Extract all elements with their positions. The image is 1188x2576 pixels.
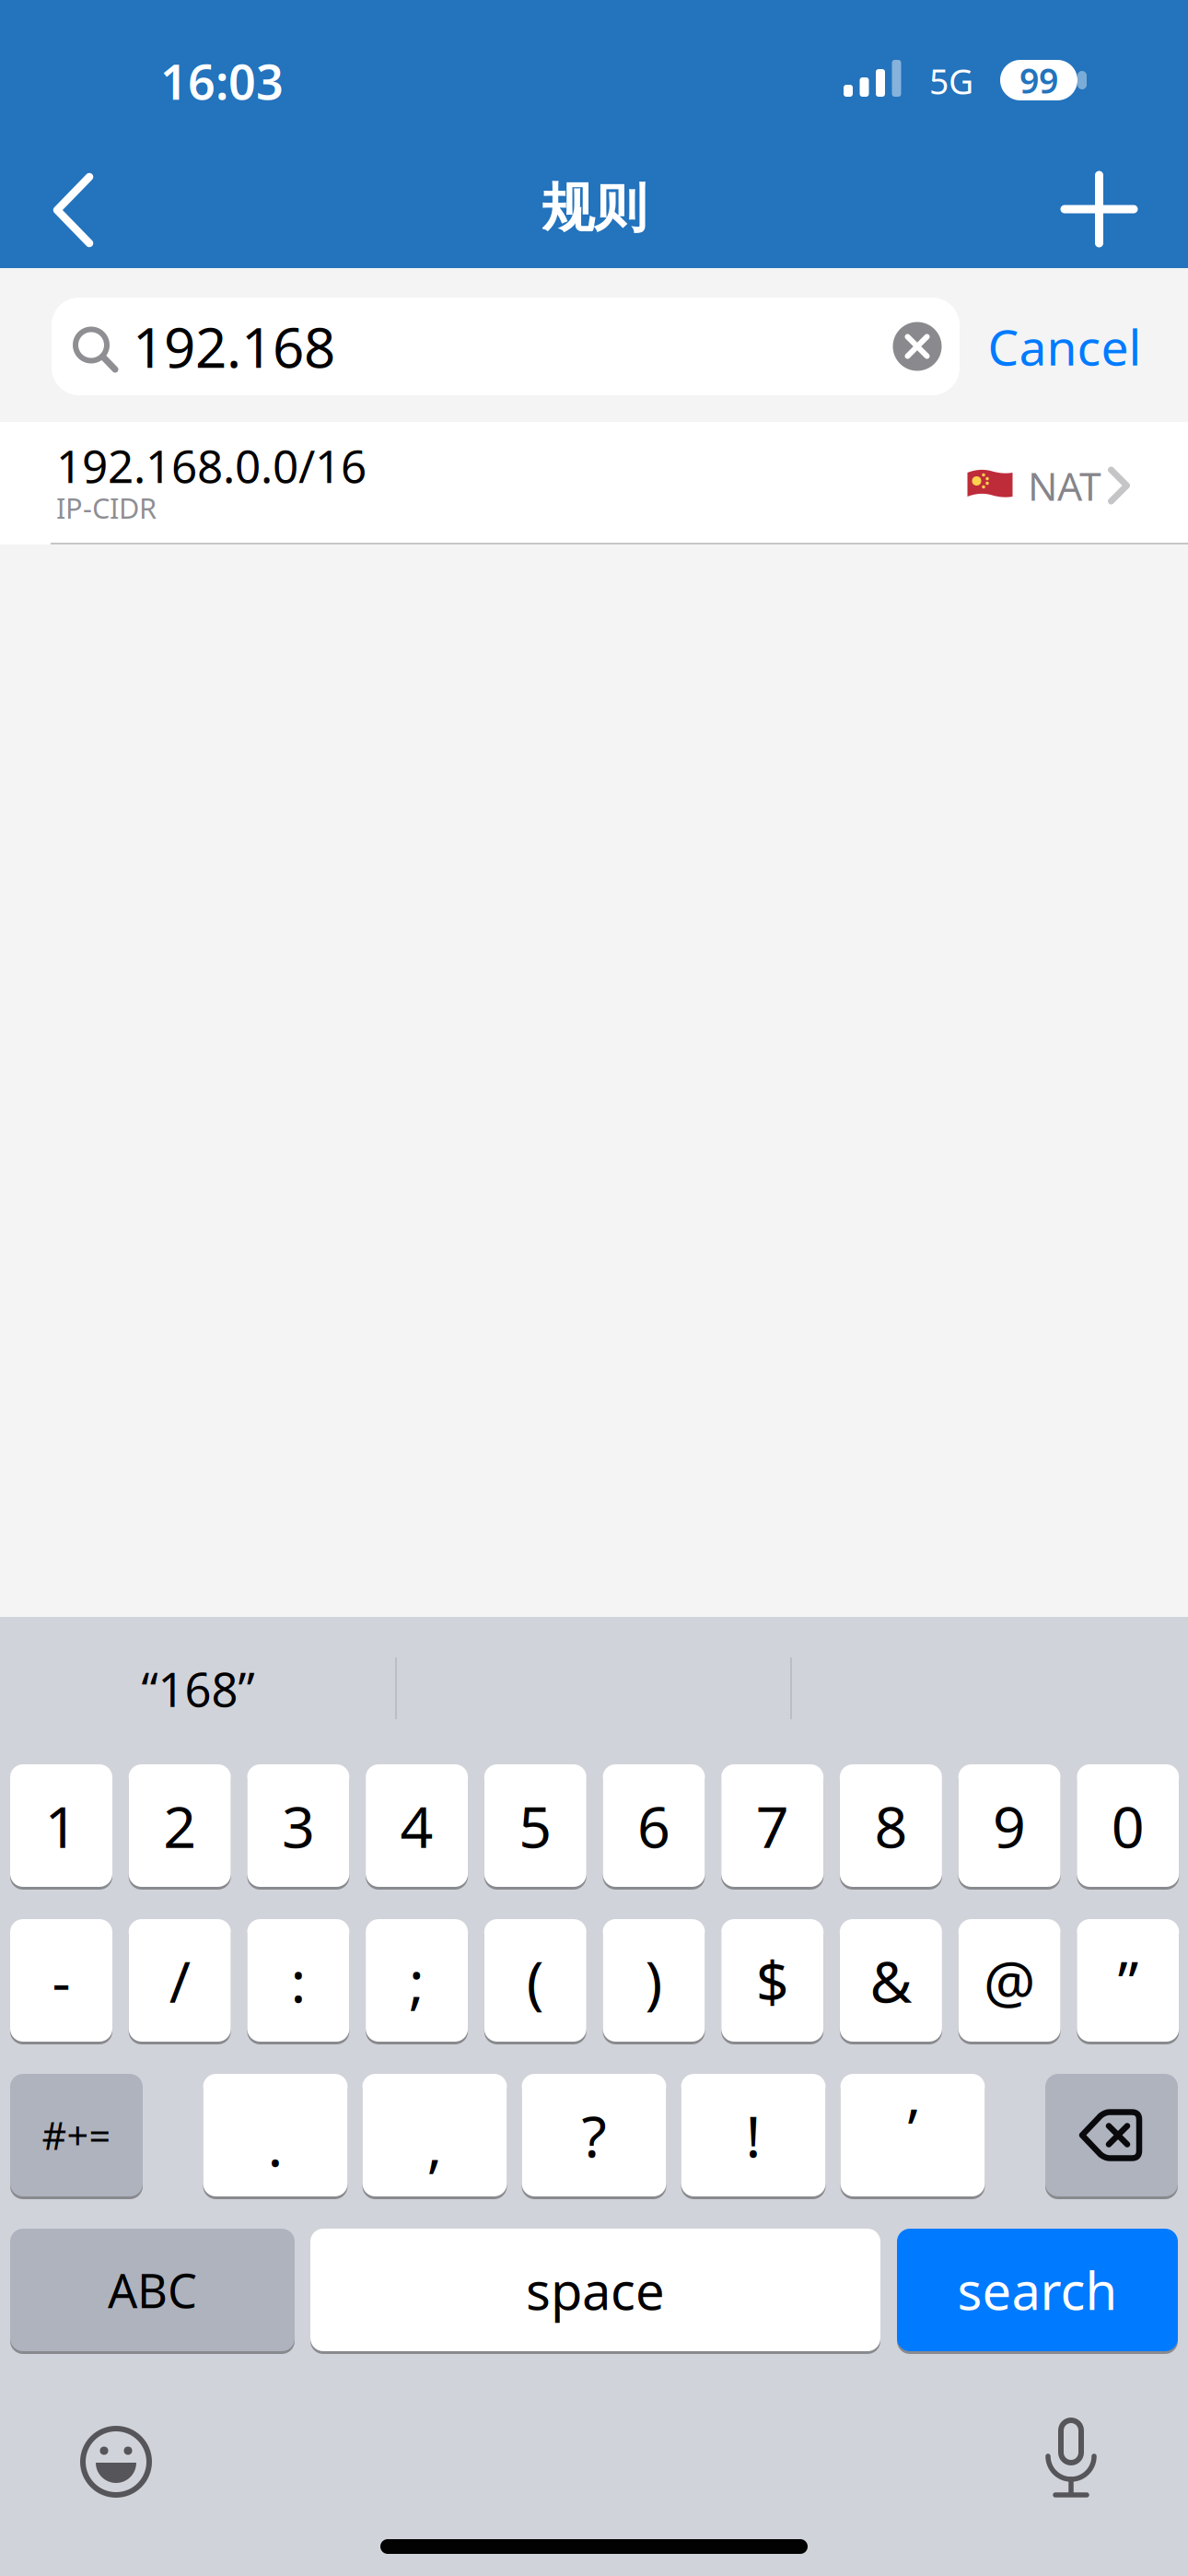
staticText: 8 xyxy=(874,1787,907,1864)
staticText: / xyxy=(169,1942,190,2019)
staticText: NAT xyxy=(1028,459,1101,512)
staticText: $ xyxy=(756,1942,789,2019)
staticText: , xyxy=(427,2106,443,2183)
staticText: ’ xyxy=(908,2089,918,2166)
staticText: ( xyxy=(527,1942,544,2019)
button[interactable]: search xyxy=(897,2229,1178,2351)
button[interactable]: ! xyxy=(681,2074,826,2196)
button[interactable]: 5 xyxy=(484,1764,586,1887)
staticText: IP-CIDR xyxy=(56,489,157,526)
button[interactable]: @ xyxy=(958,1919,1061,2042)
staticText: . xyxy=(268,2106,283,2183)
button[interactable]: - xyxy=(10,1919,112,2042)
staticText: ” xyxy=(1118,1942,1138,2019)
button[interactable]: ; xyxy=(366,1919,468,2042)
button[interactable]: Dictation xyxy=(1039,2418,1103,2510)
button[interactable]: Delete xyxy=(1045,2074,1178,2196)
staticText: 规则 xyxy=(542,176,646,241)
staticText: 4 xyxy=(400,1787,433,1864)
staticText: 9 xyxy=(993,1787,1026,1864)
staticText: 2 xyxy=(163,1787,196,1864)
staticText: “168” xyxy=(141,1658,255,1720)
button[interactable]: & xyxy=(840,1919,942,2042)
button[interactable]: Search xyxy=(52,298,960,395)
button[interactable]: 9 xyxy=(958,1764,1061,1887)
button[interactable]: space xyxy=(310,2229,880,2351)
button[interactable]: $ xyxy=(721,1919,823,2042)
button[interactable]: 7 xyxy=(721,1764,823,1887)
staticText: ! xyxy=(745,2097,761,2173)
button[interactable]: Back xyxy=(46,173,101,247)
staticText: 16:03 xyxy=(160,49,284,113)
button[interactable]: Add rule xyxy=(1065,175,1134,243)
button[interactable]: ABC xyxy=(10,2229,295,2351)
staticText: 5G xyxy=(929,58,973,104)
staticText: @ xyxy=(984,1942,1035,2019)
staticText: 1 xyxy=(45,1787,78,1864)
staticText: 7 xyxy=(756,1787,789,1864)
staticText: 192.168 xyxy=(133,310,335,383)
button[interactable]: 0 xyxy=(1077,1764,1179,1887)
staticText: ? xyxy=(582,2097,606,2173)
staticText: : xyxy=(290,1942,306,2019)
button[interactable]: Cancel xyxy=(988,314,1141,379)
staticText: 99 xyxy=(1019,57,1058,103)
staticText: search xyxy=(957,2256,1118,2324)
button[interactable]: 2 xyxy=(129,1764,231,1887)
button[interactable]: , xyxy=(362,2074,507,2196)
button[interactable]: 1 xyxy=(10,1764,112,1887)
button[interactable]: ? xyxy=(522,2074,666,2196)
button[interactable]: #+= xyxy=(10,2074,143,2196)
staticText: 0 xyxy=(1111,1787,1145,1864)
button[interactable]: : xyxy=(247,1919,349,2042)
button[interactable]: ( xyxy=(484,1919,586,2042)
button[interactable]: 192.168.0.0/16 xyxy=(0,422,1188,544)
staticText: - xyxy=(52,1942,70,2019)
button[interactable]: 6 xyxy=(603,1764,705,1887)
button[interactable]: . xyxy=(203,2074,348,2196)
staticText: space xyxy=(526,2256,665,2324)
button[interactable]: / xyxy=(129,1919,231,2042)
staticText: ABC xyxy=(108,2259,197,2321)
button[interactable]: 8 xyxy=(840,1764,942,1887)
staticText: 192.168.0.0/16 xyxy=(56,435,367,495)
staticText: ; xyxy=(409,1942,425,2019)
button[interactable]: ” xyxy=(1077,1919,1179,2042)
staticText: ) xyxy=(645,1942,663,2019)
staticText: 6 xyxy=(637,1787,670,1864)
button[interactable]: ) xyxy=(603,1919,705,2042)
staticText: 5 xyxy=(519,1787,552,1864)
button[interactable]: 3 xyxy=(247,1764,349,1887)
staticText: & xyxy=(870,1942,912,2019)
button[interactable]: “168” xyxy=(5,1638,391,1739)
button[interactable]: ’ xyxy=(840,2074,985,2196)
staticText: 3 xyxy=(282,1787,315,1864)
button[interactable]: 4 xyxy=(366,1764,468,1887)
staticText: #+= xyxy=(42,2110,111,2160)
staticText: Cancel xyxy=(988,314,1141,379)
button[interactable]: Clear text xyxy=(893,322,942,371)
button[interactable]: Emoji xyxy=(75,2420,157,2503)
